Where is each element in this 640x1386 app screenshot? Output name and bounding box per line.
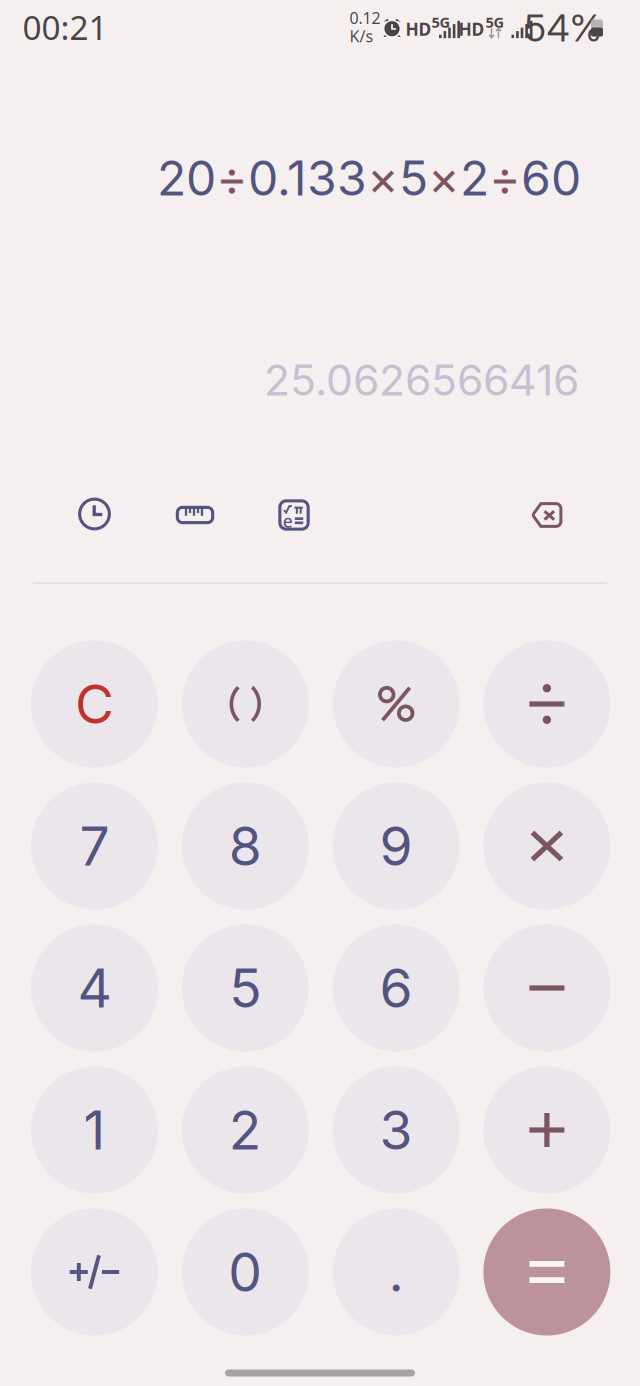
staticText: C: [75, 672, 114, 736]
staticText: 2: [460, 149, 489, 207]
staticText: ×: [428, 149, 460, 207]
button[interactable]: 5: [182, 924, 309, 1051]
button[interactable]: Delete: [529, 502, 562, 528]
staticText: HD: [458, 17, 484, 40]
staticText: 25.0626566416: [264, 354, 579, 406]
button[interactable]: Equals: [483, 1208, 610, 1335]
button[interactable]: 4: [31, 924, 158, 1051]
button[interactable]: Unit converter: [176, 506, 214, 524]
button[interactable]: Multiply: [483, 782, 610, 909]
button[interactable]: 1: [31, 1066, 158, 1193]
button[interactable]: 2: [182, 1066, 309, 1193]
staticText: 9: [380, 814, 413, 878]
staticText: 4: [77, 956, 111, 1020]
button[interactable]: Subtract: [483, 924, 610, 1051]
staticText: 1: [83, 1098, 105, 1162]
button[interactable]: Parentheses: [182, 640, 309, 767]
button[interactable]: Divide: [483, 640, 610, 767]
staticText: 5G: [485, 12, 504, 32]
staticText: 0: [228, 1240, 262, 1304]
button[interactable]: 6: [333, 924, 460, 1051]
button[interactable]: Add: [483, 1066, 610, 1193]
button[interactable]: 0: [182, 1208, 309, 1335]
button[interactable]: History: [78, 497, 111, 530]
staticText: ÷: [489, 149, 521, 207]
button[interactable]: 9: [333, 782, 460, 909]
staticText: 5: [399, 149, 428, 207]
staticText: 3: [380, 1098, 413, 1162]
staticText: 7: [79, 814, 109, 878]
staticText: 6: [380, 956, 413, 1020]
staticText: 20: [157, 149, 216, 207]
staticText: 5G: [431, 12, 450, 32]
button[interactable]: C: [31, 640, 158, 767]
button[interactable]: 8: [182, 782, 309, 909]
staticText: 8: [229, 814, 262, 878]
staticText: 0.133: [248, 149, 367, 207]
staticText: 60: [521, 149, 581, 207]
button[interactable]: .: [333, 1208, 460, 1335]
staticText: ÷: [216, 149, 248, 207]
staticText: 2: [229, 1098, 262, 1162]
staticText: K/s: [349, 25, 373, 47]
button[interactable]: 3: [333, 1066, 460, 1193]
button[interactable]: Percent: [333, 640, 460, 767]
staticText: 5: [229, 956, 261, 1020]
staticText: e: [283, 509, 293, 532]
staticText: 54%: [524, 5, 601, 51]
staticText: HD: [405, 17, 431, 40]
staticText: .: [389, 1240, 404, 1304]
staticText: 0.12: [349, 7, 380, 28]
button[interactable]: Toggle sign: [31, 1208, 158, 1335]
staticText: 00:21: [22, 5, 107, 49]
staticText: ×: [367, 149, 399, 207]
button[interactable]: Scientific functions: [278, 499, 310, 531]
button[interactable]: 7: [31, 782, 158, 909]
